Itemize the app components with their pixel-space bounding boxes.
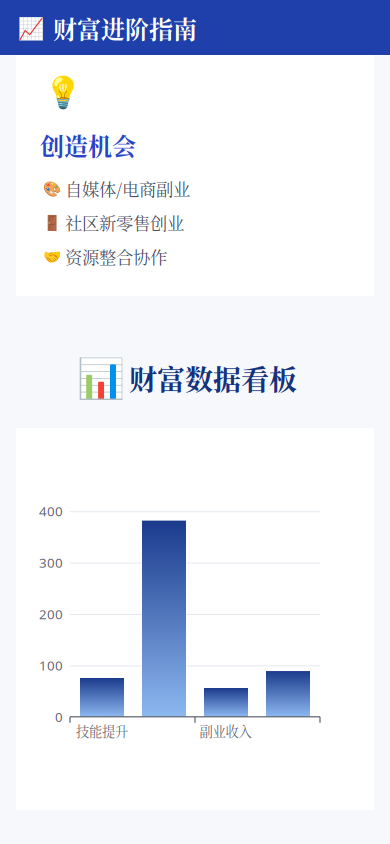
staticText: 财富进阶指南 — [53, 11, 197, 45]
staticText: 社区新零售创业 — [65, 210, 184, 235]
staticText: 0 — [55, 708, 63, 726]
staticText: 📈 — [18, 16, 45, 41]
staticText: 🤝 — [43, 248, 61, 265]
staticText: 300 — [39, 553, 63, 572]
staticText: 💡 — [44, 75, 82, 111]
staticText: 技能提升 — [76, 721, 128, 740]
staticText: 自媒体/电商副业 — [65, 176, 190, 201]
staticText: 财富数据看板 — [129, 358, 297, 398]
button[interactable]: 🚪 — [40, 208, 360, 238]
button[interactable]: 财富进阶指南 — [0, 0, 210, 55]
button[interactable]: 🎨 — [40, 174, 360, 204]
staticText: 100 — [39, 656, 63, 674]
staticText: 📊 — [77, 356, 125, 401]
staticText: 创造机会 — [40, 128, 136, 162]
staticText: 400 — [39, 502, 63, 520]
staticText: 资源整合协作 — [65, 244, 167, 269]
staticText: 副业收入 — [199, 721, 251, 740]
staticText: 🎨 — [43, 180, 61, 197]
staticText: 200 — [39, 605, 63, 623]
button[interactable]: 🤝 — [40, 242, 360, 272]
staticText: 🚪 — [43, 214, 61, 231]
